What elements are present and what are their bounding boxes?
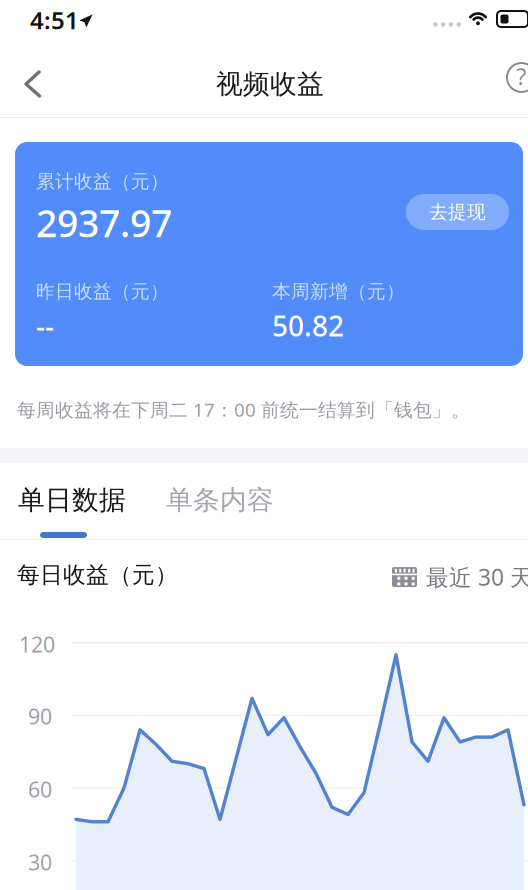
staticText: 本周新增（元） [272,280,405,303]
staticText: 4:51 [30,4,79,36]
staticText: -- [36,307,54,344]
staticText: 单条内容 [166,484,274,516]
staticText: ? [516,61,526,91]
button[interactable]: 去提现 [406,194,509,230]
staticText: 50.82 [272,307,344,344]
staticText: 120 [19,630,55,658]
staticText: 单日数据 [18,484,126,516]
staticText: 每周收益将在下周二 17：00 前统一结算到「钱包」。 [17,397,470,422]
button[interactable]: Back [0,60,66,118]
staticText: 60 [28,775,52,803]
button[interactable]: 单日数据 [0,467,148,533]
staticText: 最近 30 天 [426,562,528,592]
staticText: 昨日收益（元） [36,280,169,303]
button[interactable]: 最近 30 天 [392,562,528,592]
staticText: 视频收益 [216,68,324,100]
staticText: 30 [28,848,52,876]
staticText: 累计收益（元） [36,170,169,193]
button[interactable]: 单条内容 [148,467,288,533]
staticText: 去提现 [429,200,486,223]
staticText: 90 [28,702,52,730]
staticText: 每日收益（元） [17,561,178,589]
staticText: 2937.97 [36,198,172,247]
button[interactable]: Help [496,52,528,104]
